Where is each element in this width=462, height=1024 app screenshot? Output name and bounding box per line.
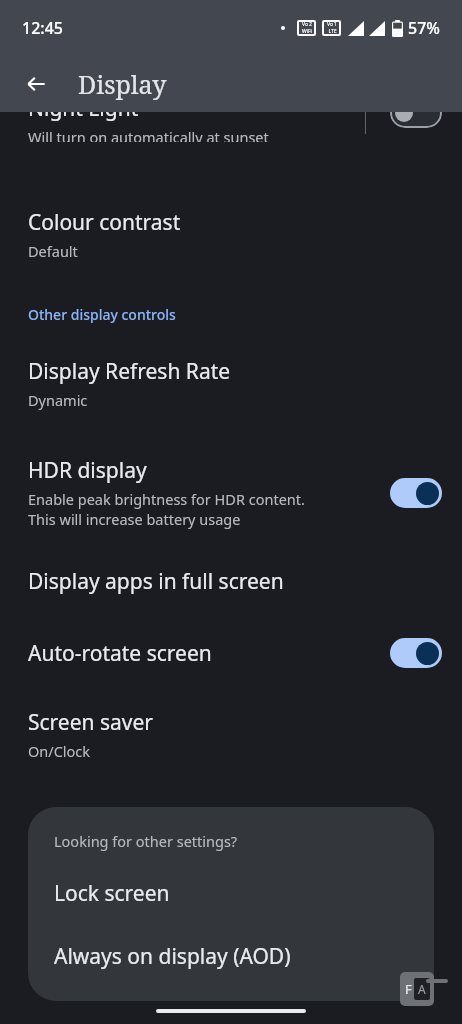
staticText: A: [418, 981, 426, 997]
button[interactable]: HDR display: [0, 456, 462, 529]
button[interactable]: Night Light: [0, 112, 462, 160]
staticText: F: [405, 980, 412, 998]
staticText: Vo: [327, 21, 333, 28]
button[interactable]: Auto-rotate screen: [0, 638, 462, 668]
staticText: Will turn on automatically at sunset: [28, 127, 269, 142]
staticText: 1: [334, 21, 337, 28]
staticText: Dynamic: [28, 390, 88, 410]
button[interactable]: Display apps in full screen: [0, 567, 462, 596]
button[interactable]: Screen saver: [0, 708, 462, 761]
button[interactable]: Always on display (AOD): [28, 942, 434, 971]
staticText: Display Refresh Rate: [28, 357, 231, 386]
button[interactable]: Night Light toggle: [390, 98, 442, 128]
staticText: Default: [28, 241, 78, 261]
staticText: 12:45: [22, 17, 63, 39]
staticText: Always on display (AOD): [54, 942, 291, 971]
button[interactable]: Auto-rotate screen toggle: [390, 638, 442, 668]
staticText: Lock screen: [54, 879, 170, 908]
staticText: LTE: [328, 28, 337, 35]
staticText: Looking for other settings?: [54, 831, 238, 851]
staticText: Display: [78, 67, 167, 101]
staticText: Colour contrast: [28, 208, 181, 237]
staticText: On/Clock: [28, 741, 91, 761]
staticText: 57%: [408, 17, 440, 39]
button[interactable]: HDR display toggle: [390, 478, 442, 508]
button[interactable]: Back: [12, 60, 60, 108]
staticText: WiFi: [302, 28, 312, 35]
button[interactable]: Lock screen: [28, 879, 434, 908]
staticText: Screen saver: [28, 708, 154, 737]
staticText: Other display controls: [28, 305, 176, 324]
staticText: Vo: [302, 21, 308, 28]
staticText: Night Light: [28, 94, 139, 123]
staticText: Display apps in full screen: [28, 567, 284, 596]
staticText: Enable peak brightness for HDR content. …: [28, 489, 305, 529]
button[interactable]: Display Refresh Rate: [0, 357, 462, 410]
button[interactable]: Colour contrast: [0, 208, 462, 261]
staticText: HDR display: [28, 456, 147, 485]
staticText: Auto-rotate screen: [28, 639, 390, 668]
staticText: 2: [309, 21, 312, 28]
